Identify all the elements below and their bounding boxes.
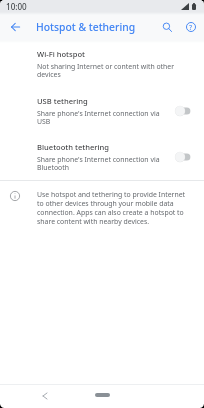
- staticText: Bluetooth: [37, 163, 69, 171]
- staticText: 10:00: [6, 1, 27, 12]
- staticText: USB: [37, 117, 51, 125]
- staticText: share content with nearby devices.: [37, 217, 150, 226]
- staticText: Bluetooth tethering: [37, 142, 109, 152]
- button[interactable]: Back: [37, 388, 53, 404]
- staticText: devices: [37, 70, 61, 78]
- staticText: Share phone's Internet connection via: [37, 155, 160, 163]
- staticText: connection. Apps can also create a hotsp…: [37, 208, 184, 217]
- staticText: Not sharing Internet or content with oth…: [37, 62, 175, 70]
- staticText: USB tethering: [37, 96, 88, 106]
- button[interactable]: Navigate up: [3, 15, 27, 39]
- staticText: Use hotspot and tethering to provide Int…: [37, 190, 186, 199]
- staticText: Share phone's Internet connection via: [37, 109, 160, 117]
- staticText: Wi-Fi hotspot: [37, 49, 85, 59]
- button[interactable]: Search: [155, 15, 179, 39]
- button[interactable]: Wi-Fi hotspot: [0, 48, 204, 95]
- button[interactable]: Help: [179, 15, 203, 39]
- button[interactable]: Toggle USB tethering: [171, 103, 195, 119]
- staticText: to other devices through your mobile dat…: [37, 199, 174, 208]
- button[interactable]: USB tethering: [0, 95, 204, 139]
- button[interactable]: Toggle Bluetooth tethering: [171, 149, 195, 165]
- staticText: ?: [189, 22, 193, 32]
- staticText: Hotspot & tethering: [36, 20, 136, 34]
- button[interactable]: Bluetooth tethering: [0, 141, 204, 185]
- button[interactable]: Home: [82, 388, 122, 402]
